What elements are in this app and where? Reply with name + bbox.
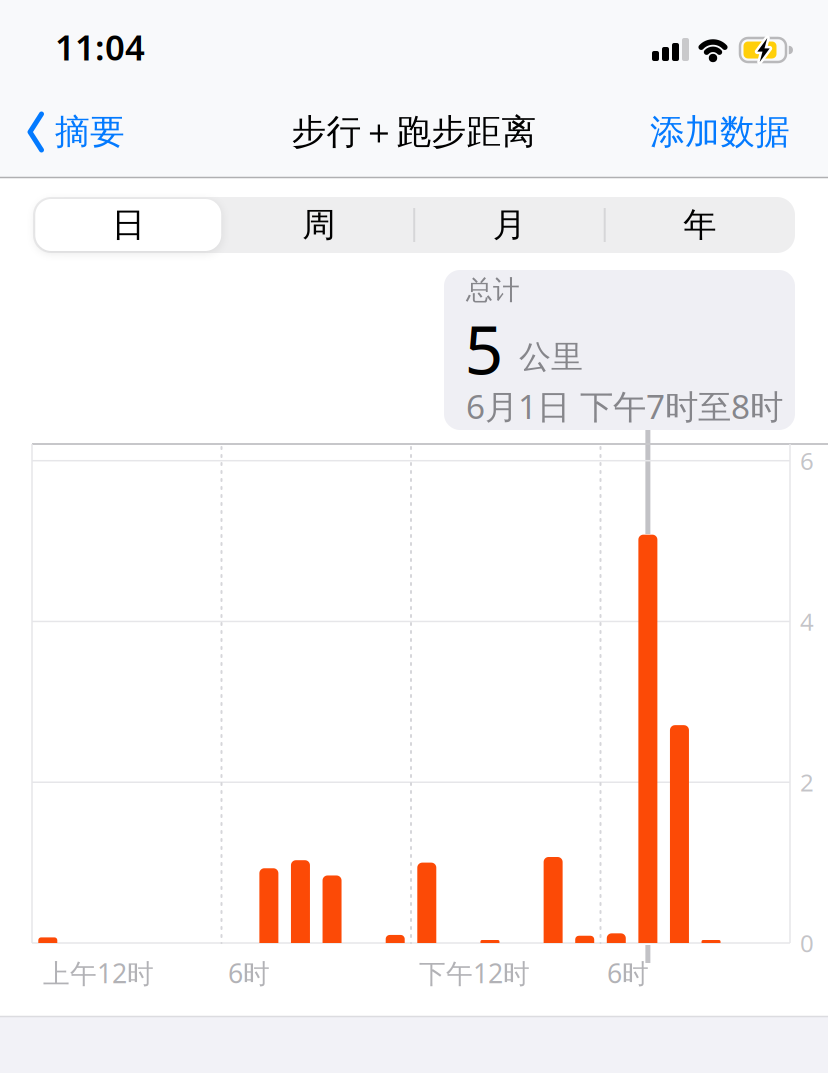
staticText: 11:04	[55, 24, 145, 70]
staticText: 0	[800, 927, 814, 959]
staticText: 摘要	[55, 111, 125, 153]
button[interactable]: 日	[33, 197, 223, 253]
button[interactable]: 添加数据	[640, 102, 790, 162]
staticText: 6月1日 下午7时至8时	[466, 384, 783, 428]
staticText: 4	[800, 605, 814, 637]
button[interactable]: 月	[414, 197, 604, 253]
button[interactable]: 年	[605, 197, 795, 253]
staticText: 下午12时	[419, 955, 530, 991]
staticText: 6时	[228, 955, 270, 991]
staticText: 上午12时	[43, 955, 154, 991]
staticText: 添加数据	[650, 111, 790, 153]
staticText: 5	[464, 303, 503, 393]
staticText: 步行＋跑步距离	[291, 111, 536, 153]
staticText: 月	[493, 204, 526, 245]
button[interactable]: 周	[224, 197, 414, 253]
staticText: 6	[800, 445, 814, 477]
staticText: 周	[302, 204, 335, 245]
staticText: 2	[800, 766, 814, 798]
staticText: 年	[683, 204, 716, 245]
staticText: 公里	[519, 337, 583, 377]
button[interactable]: 返回摘要	[27, 102, 129, 162]
staticText: 日	[112, 204, 145, 245]
staticText: 总计	[466, 274, 520, 306]
staticText: 6时	[607, 955, 649, 991]
